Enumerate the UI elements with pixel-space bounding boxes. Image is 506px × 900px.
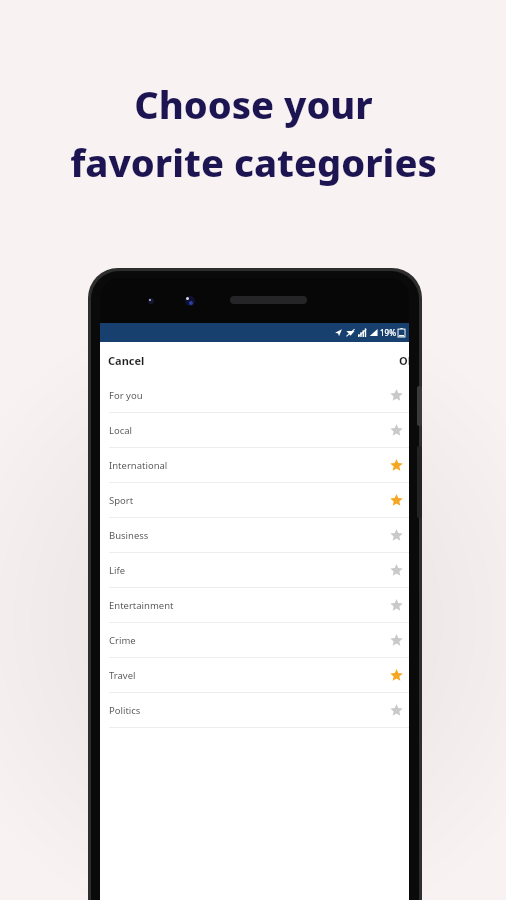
other: Remove International from favorites: [390, 459, 403, 472]
staticText: Business: [109, 529, 390, 542]
staticText: Choose your: [134, 78, 373, 130]
button[interactable]: For you: [100, 378, 409, 413]
button[interactable]: Sport: [100, 483, 409, 518]
button[interactable]: Life: [100, 553, 409, 588]
button[interactable]: Ok: [391, 347, 409, 374]
button[interactable]: Business: [100, 518, 409, 553]
button[interactable]: Politics: [100, 693, 409, 728]
staticText: Entertainment: [109, 599, 390, 612]
other: Add Life to favorites: [390, 564, 403, 577]
button[interactable]: Crime: [100, 623, 409, 658]
staticText: Politics: [109, 704, 390, 717]
other: Add Politics to favorites: [390, 704, 403, 717]
staticText: Ok: [399, 353, 409, 368]
other: Add Crime to favorites: [390, 634, 403, 647]
button[interactable]: International: [100, 448, 409, 483]
staticText: International: [109, 459, 390, 472]
staticText: favorite categories: [70, 136, 437, 188]
staticText: For you: [109, 389, 390, 402]
other: Remove Travel from favorites: [390, 669, 403, 682]
staticText: Sport: [109, 494, 390, 507]
button[interactable]: Cancel: [100, 347, 153, 374]
other: Remove Sport from favorites: [390, 494, 403, 507]
staticText: Local: [109, 424, 390, 437]
staticText: Cancel: [108, 353, 145, 368]
button[interactable]: Local: [100, 413, 409, 448]
other: Add Entertainment to favorites: [390, 599, 403, 612]
button[interactable]: Entertainment: [100, 588, 409, 623]
other: Add For you to favorites: [390, 389, 403, 402]
staticText: Crime: [109, 634, 390, 647]
other: Add Business to favorites: [390, 529, 403, 542]
staticText: Travel: [109, 669, 390, 682]
staticText: Life: [109, 564, 390, 577]
button[interactable]: Travel: [100, 658, 409, 693]
other: Add Local to favorites: [390, 424, 403, 437]
staticText: 19%: [380, 327, 396, 338]
